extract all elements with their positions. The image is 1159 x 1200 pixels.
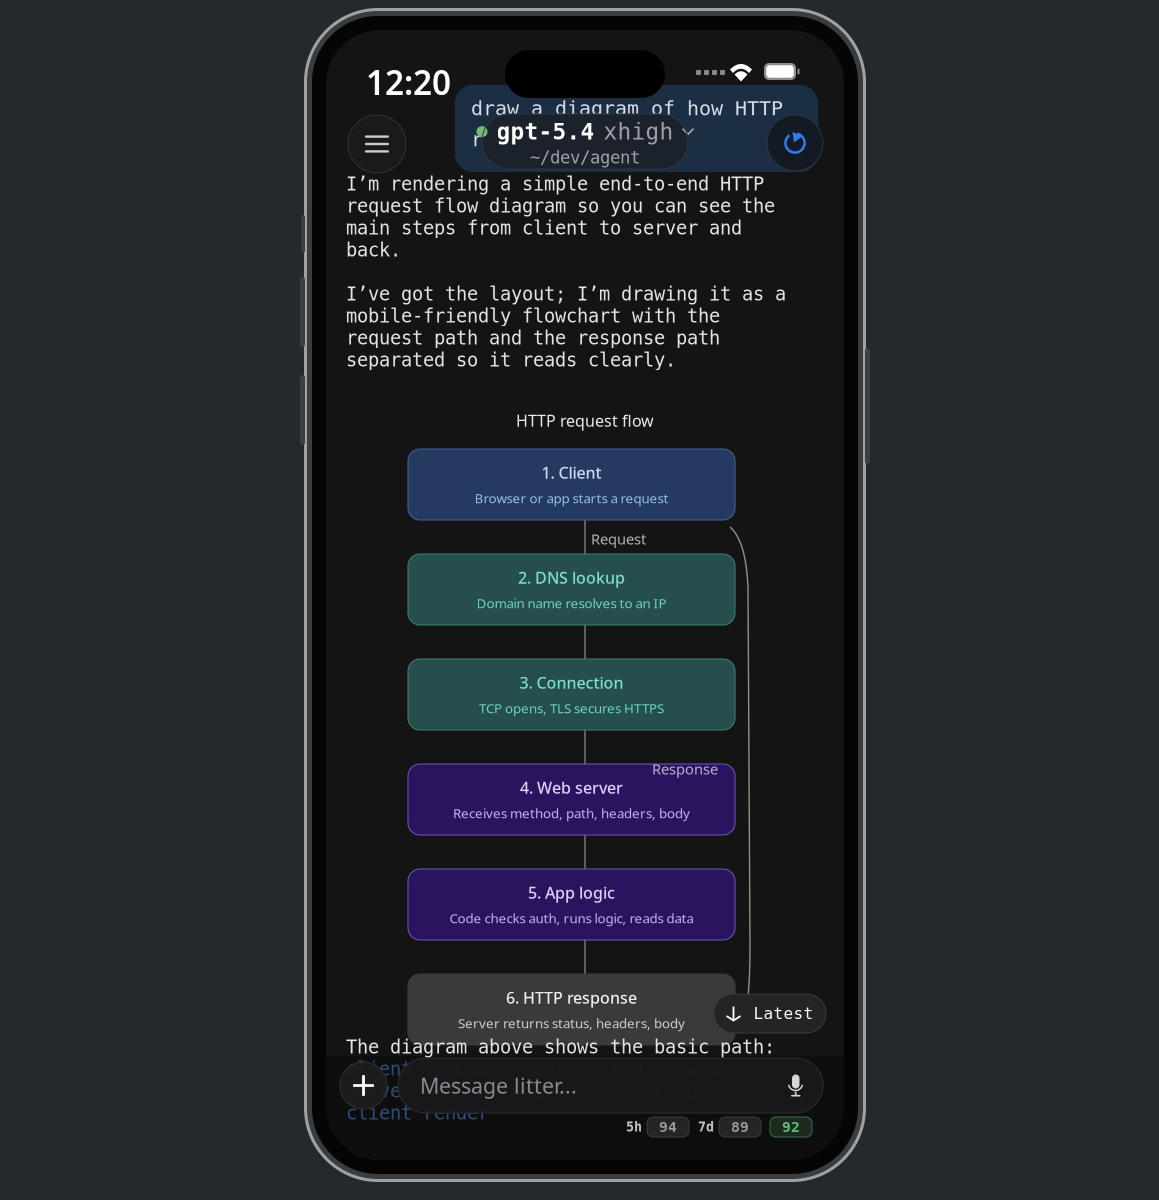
button[interactable]: gpt-5.4	[482, 114, 688, 169]
button[interactable]: Message litter...	[398, 1058, 823, 1113]
staticText: Latest	[753, 1004, 813, 1023]
button[interactable]: Add attachment	[340, 1062, 387, 1109]
staticText: requests work	[471, 128, 627, 151]
staticText: 3. Connection	[519, 672, 623, 693]
staticText: 2. DNS lookup	[518, 567, 625, 588]
staticText: xhigh	[603, 119, 673, 144]
staticText: 89	[731, 1119, 749, 1135]
staticText: 12:20	[366, 60, 451, 104]
staticText: Request	[591, 529, 646, 548]
staticText: 1. Client	[541, 462, 601, 483]
staticText: Response	[652, 759, 718, 778]
staticText: 5h	[626, 1119, 642, 1134]
staticText: Message litter...	[420, 1071, 577, 1100]
staticText: 4. Web server	[520, 777, 623, 798]
staticText: gpt-5.4	[496, 119, 594, 144]
staticText: Domain name resolves to an IP	[476, 594, 666, 612]
staticText: Browser or app starts a request	[474, 489, 668, 507]
staticText: server -> app logic -> HTTP response ->	[346, 1080, 775, 1102]
staticText: 92	[782, 1119, 800, 1135]
button[interactable]: Dictate	[781, 1071, 811, 1101]
staticText: request path and the response path	[346, 327, 720, 349]
button[interactable]: Refresh	[767, 115, 823, 171]
staticText: The diagram above shows the basic path:	[346, 1036, 775, 1058]
staticText: Code checks auth, runs logic, reads data	[449, 909, 693, 927]
staticText: mobile-friendly flowchart with the	[346, 305, 720, 327]
staticText: request flow diagram so you can see the	[346, 195, 775, 217]
staticText: main steps from client to server and	[346, 217, 742, 239]
button[interactable]: Latest	[714, 994, 826, 1033]
staticText: Server returns status, headers, body	[458, 1014, 685, 1032]
staticText: 94	[659, 1119, 677, 1135]
staticText: I’ve got the layout; I’m drawing it as a	[346, 283, 786, 305]
staticText: 7d	[698, 1119, 714, 1134]
staticText: I’m rendering a simple end-to-end HTTP	[346, 173, 764, 195]
staticText: client -> DNS -> connection -> web	[346, 1058, 720, 1080]
staticText: ~/dev/agent	[530, 148, 640, 167]
staticText: 5. App logic	[528, 882, 615, 903]
staticText: back.	[346, 239, 401, 261]
staticText: TCP opens, TLS secures HTTPS	[479, 699, 664, 717]
staticText: client render	[346, 1102, 489, 1124]
button[interactable]: Menu	[348, 115, 406, 173]
staticText: 6. HTTP response	[506, 987, 637, 1008]
staticText: HTTP request flow	[516, 410, 654, 431]
staticText: draw a diagram of how HTTP	[471, 97, 783, 120]
staticText: Receives method, path, headers, body	[453, 804, 690, 822]
staticText: separated so it reads clearly.	[346, 349, 676, 371]
